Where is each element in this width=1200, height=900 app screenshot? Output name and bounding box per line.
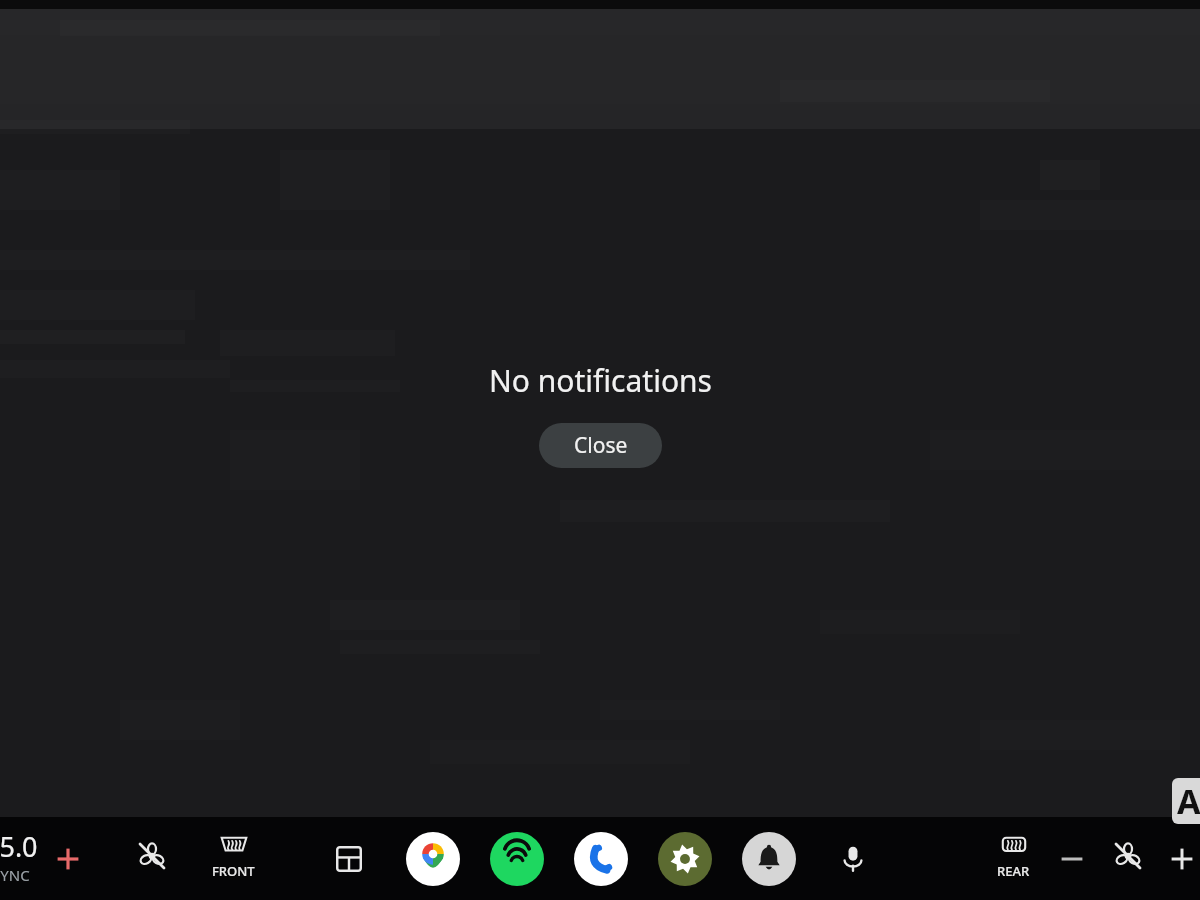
button[interactable]: Dashboard — [322, 832, 376, 886]
button[interactable]: Increase temperature — [1162, 839, 1200, 879]
staticText: A — [1177, 778, 1200, 824]
staticText: SYNC — [0, 865, 30, 885]
button[interactable]: Notifications — [742, 832, 796, 886]
staticText: 25.0 — [0, 828, 38, 865]
staticText: No notifications — [489, 360, 712, 401]
button[interactable]: REAR — [997, 836, 1030, 880]
button[interactable]: Assistant — [1172, 778, 1200, 824]
button[interactable]: Settings — [658, 832, 712, 886]
button[interactable]: FRONT — [212, 836, 255, 880]
button[interactable]: Voice assistant — [826, 832, 880, 886]
button[interactable]: Increase temperature — [46, 837, 90, 881]
button[interactable]: Spotify — [490, 832, 544, 886]
button[interactable]: Phone — [574, 832, 628, 886]
button[interactable]: Close — [539, 423, 662, 468]
staticText: REAR — [997, 862, 1030, 880]
button[interactable]: Fan off — [128, 832, 176, 880]
button[interactable]: Maps — [406, 832, 460, 886]
button[interactable]: 25.0 — [0, 828, 38, 885]
staticText: Close — [574, 431, 628, 460]
button[interactable]: Decrease temperature — [1050, 837, 1094, 881]
button[interactable]: Fan off — [1104, 832, 1152, 880]
staticText: FRONT — [212, 862, 255, 880]
